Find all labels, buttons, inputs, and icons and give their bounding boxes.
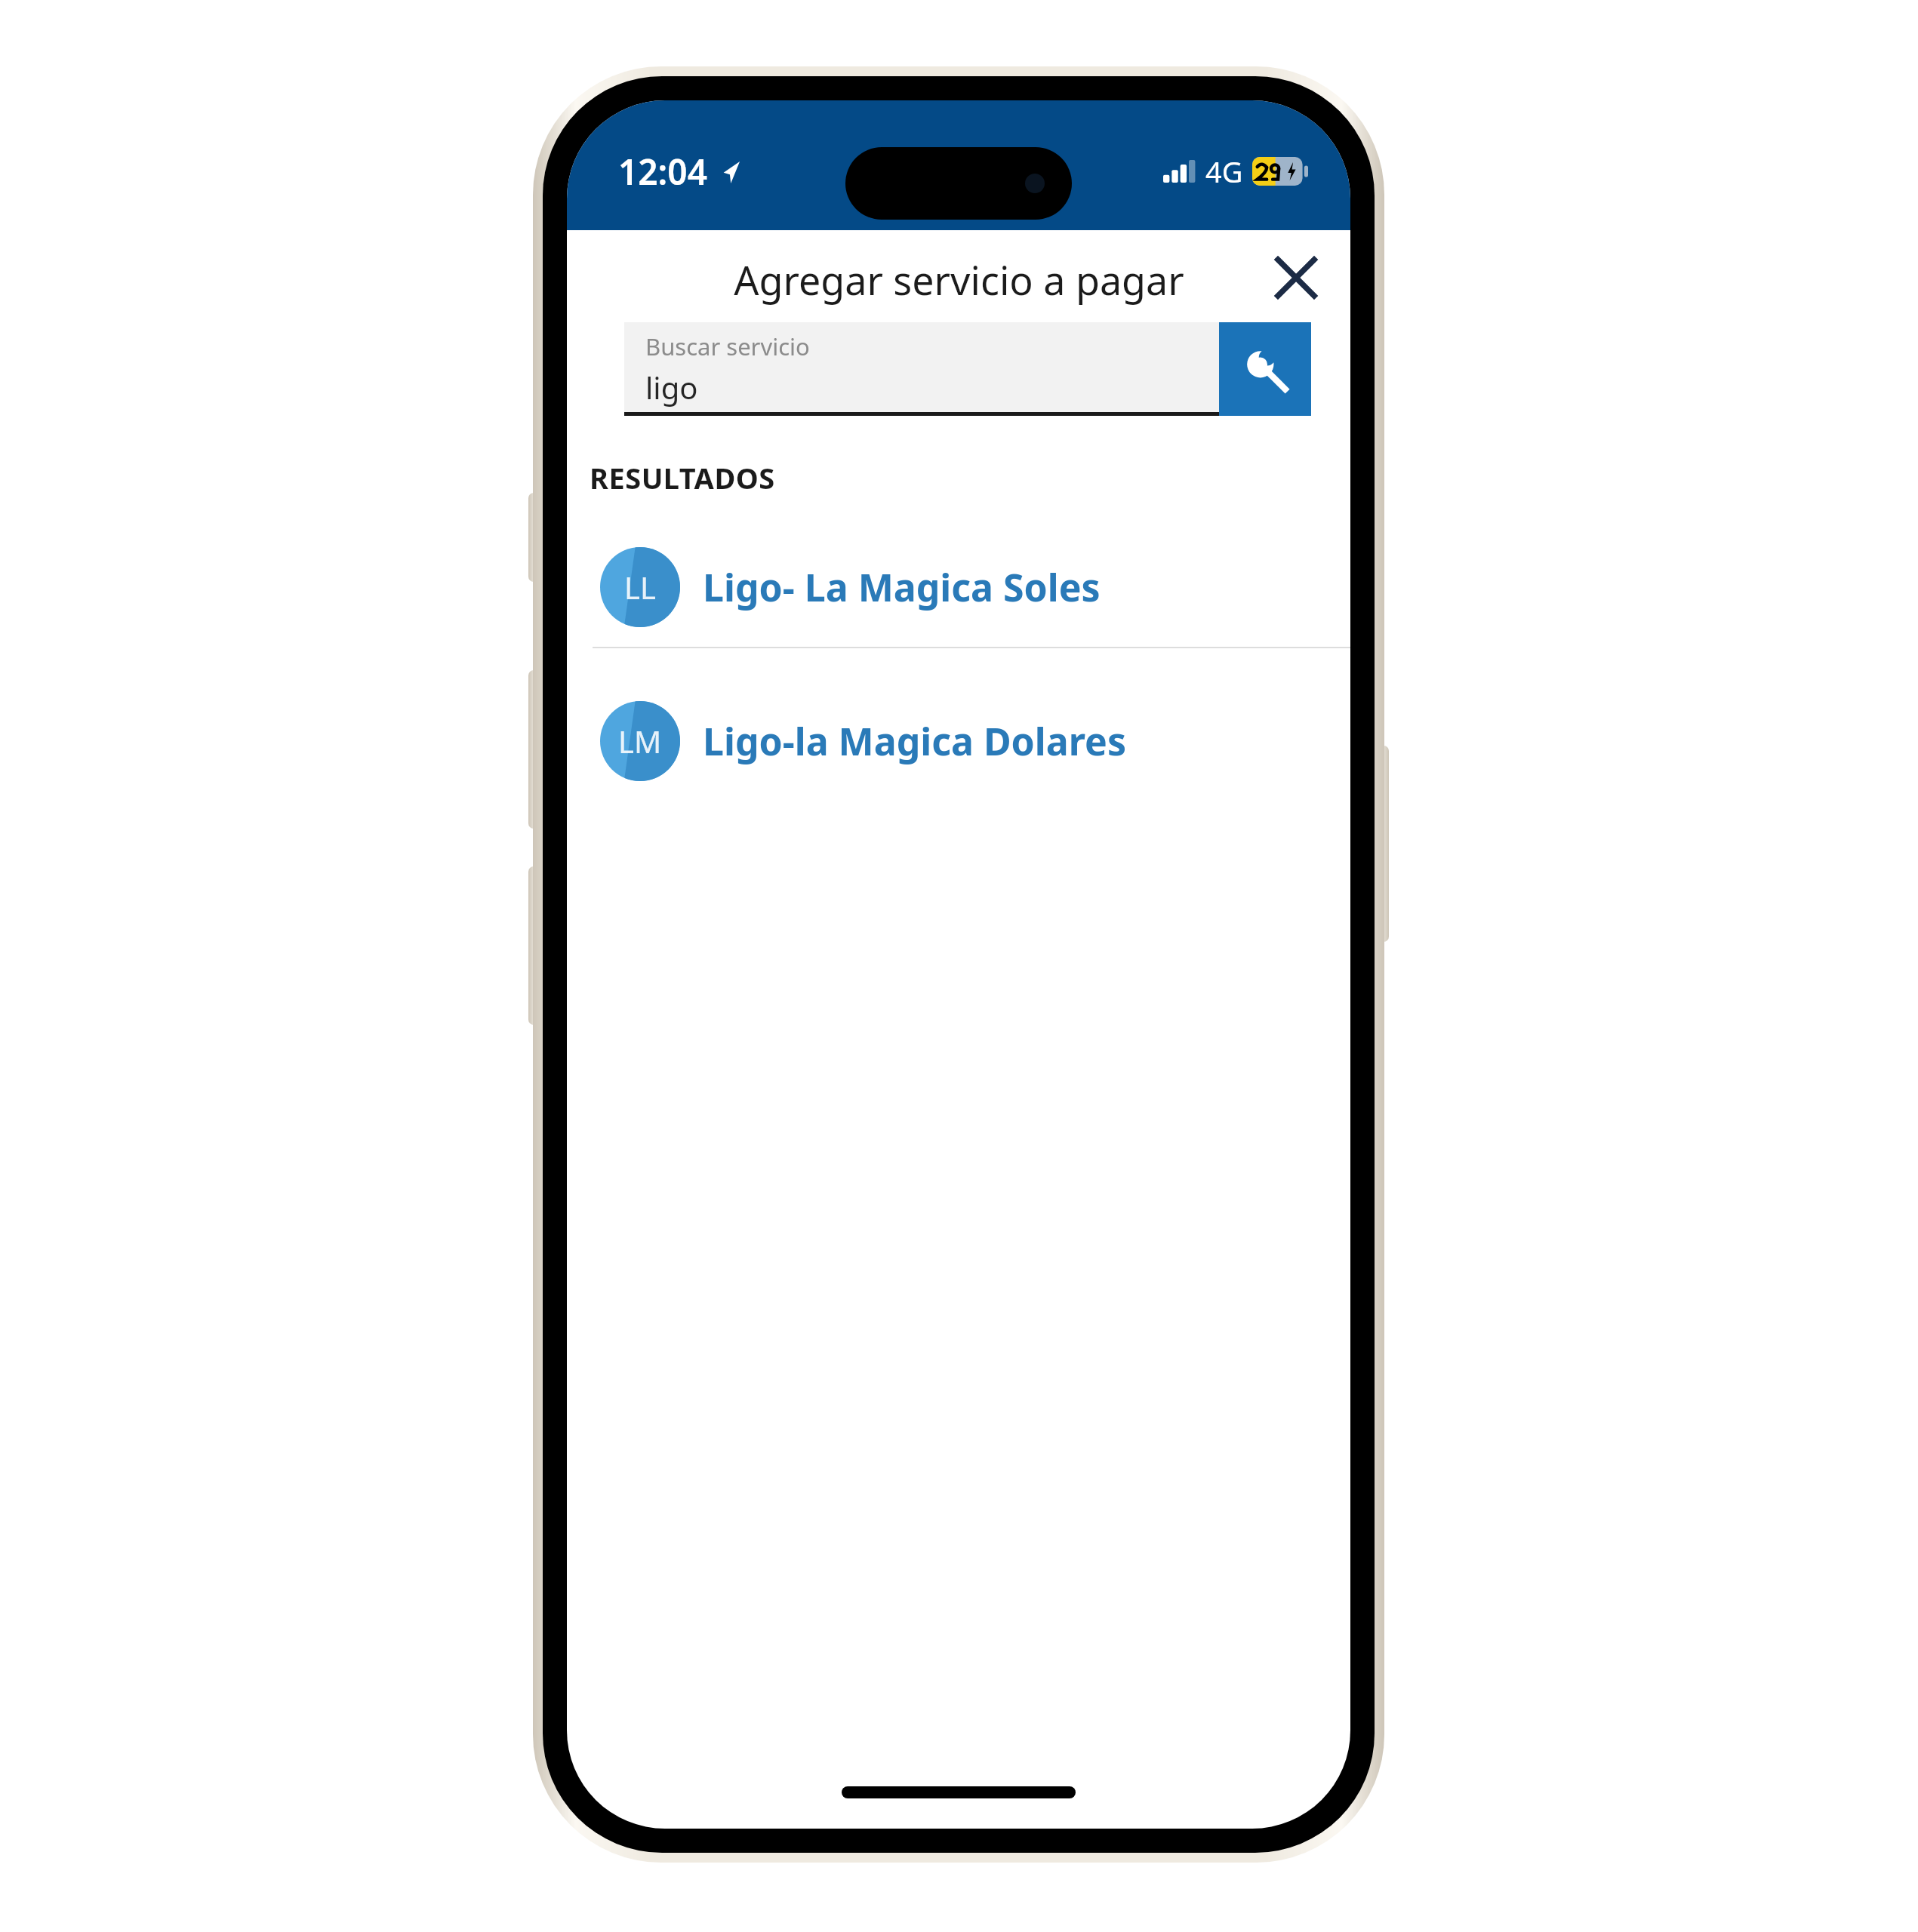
staticText: Agregar servicio a pagar [734, 253, 1184, 306]
button[interactable]: LL [567, 528, 1350, 647]
staticText: RESULTADOS [590, 458, 775, 497]
staticText: Ligo-la Magica Dolares [703, 715, 1126, 767]
button[interactable]: Buscar [1219, 322, 1311, 416]
staticText: Ligo- La Magica Soles [703, 561, 1101, 613]
staticText: 12:04 [618, 148, 707, 195]
button[interactable]: Cerrar [1261, 243, 1331, 312]
staticText: 4G [1205, 152, 1243, 191]
button[interactable]: LM [567, 681, 1350, 801]
staticText: Buscar servicio [645, 331, 810, 362]
staticText: LM [618, 721, 662, 761]
staticText: ligo [645, 367, 698, 408]
staticText: LL [624, 567, 656, 608]
button[interactable]: Buscar servicio [624, 322, 1219, 416]
